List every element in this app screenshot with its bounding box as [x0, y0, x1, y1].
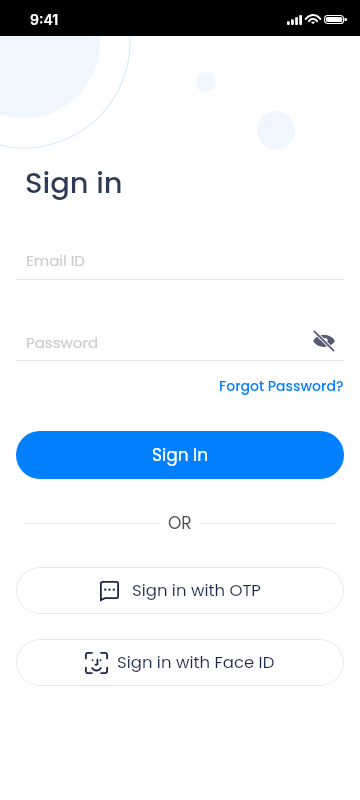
button[interactable]: Show password: [310, 327, 338, 355]
staticText: Sign In: [152, 443, 209, 467]
staticText: Sign in: [25, 163, 123, 204]
staticText: 9:41: [30, 11, 59, 28]
staticText: Sign in with OTP: [132, 579, 261, 602]
button[interactable]: Sign In: [16, 431, 344, 479]
staticText: Email ID: [26, 250, 85, 271]
button[interactable]: Sign in with OTP: [16, 567, 344, 614]
staticText: Sign in with Face ID: [117, 651, 275, 674]
button[interactable]: Sign in with Face ID: [16, 639, 344, 686]
staticText: OR: [168, 511, 192, 535]
staticText: Password: [26, 332, 99, 353]
button[interactable]: Forgot Password?: [219, 376, 360, 396]
